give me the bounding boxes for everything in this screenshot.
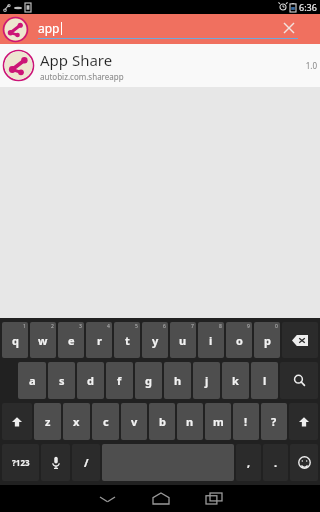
staticText: / xyxy=(84,455,89,470)
button[interactable]: p xyxy=(254,322,280,358)
staticText: b xyxy=(159,414,166,429)
staticText: 6:36 xyxy=(299,1,317,13)
button[interactable]: w xyxy=(30,322,56,358)
staticText: autobiz.com.shareapp xyxy=(40,71,124,82)
button[interactable]: v xyxy=(121,403,147,440)
staticText: 3 xyxy=(79,323,82,330)
staticText: app xyxy=(38,20,60,36)
staticText: e xyxy=(68,333,75,348)
button[interactable]: j xyxy=(193,362,220,399)
button[interactable]: g xyxy=(135,362,162,399)
staticText: z xyxy=(45,414,51,429)
button[interactable]: Backspace xyxy=(282,322,318,358)
button[interactable]: l xyxy=(251,362,278,399)
staticText: a xyxy=(29,373,36,388)
button[interactable]: Shift xyxy=(289,403,318,440)
button[interactable]: ?123 xyxy=(2,444,39,481)
button[interactable]: / xyxy=(72,444,100,481)
staticText: m xyxy=(213,414,224,429)
staticText: s xyxy=(59,373,65,388)
staticText: i xyxy=(209,333,213,348)
staticText: 2 xyxy=(51,323,54,330)
staticText: r xyxy=(97,333,102,348)
staticText: w xyxy=(38,333,48,348)
button[interactable]: m xyxy=(205,403,231,440)
button[interactable]: Home xyxy=(134,485,187,512)
button[interactable]: i xyxy=(198,322,224,358)
staticText: l xyxy=(263,373,267,388)
staticText: 8 xyxy=(219,323,222,330)
button[interactable]: Recent apps xyxy=(187,485,240,512)
button[interactable]: q xyxy=(2,322,28,358)
staticText: 7 xyxy=(191,323,194,330)
staticText: g xyxy=(145,373,152,388)
staticText: k xyxy=(232,373,239,388)
staticText: f xyxy=(117,373,122,388)
staticText: h xyxy=(174,373,182,388)
staticText: ? xyxy=(271,414,277,429)
staticText: c xyxy=(103,414,109,429)
staticText: 1.0 xyxy=(305,60,317,71)
staticText: 6 xyxy=(163,323,166,330)
button[interactable]: e xyxy=(58,322,84,358)
staticText: u xyxy=(179,333,187,348)
staticText: , xyxy=(247,455,251,470)
button[interactable]: b xyxy=(149,403,175,440)
button[interactable]: h xyxy=(164,362,191,399)
button[interactable]: c xyxy=(92,403,119,440)
button[interactable]: Emoji xyxy=(290,444,318,481)
button[interactable]: ? xyxy=(261,403,287,440)
staticText: ?123 xyxy=(12,457,30,468)
staticText: o xyxy=(236,333,243,348)
button[interactable]: y xyxy=(142,322,168,358)
button[interactable]: d xyxy=(77,362,104,399)
staticText: . xyxy=(274,455,278,470)
staticText: 1 xyxy=(23,323,26,330)
button[interactable]: u xyxy=(170,322,196,358)
button[interactable]: Voice input xyxy=(41,444,70,481)
button[interactable]: ! xyxy=(233,403,259,440)
button[interactable]: f xyxy=(106,362,133,399)
staticText: y xyxy=(152,333,159,348)
button[interactable]: Clear query xyxy=(280,19,298,37)
staticText: n xyxy=(186,414,194,429)
button[interactable]: Search xyxy=(280,362,318,399)
staticText: 9 xyxy=(247,323,250,330)
button[interactable]: , xyxy=(236,444,261,481)
button[interactable]: r xyxy=(86,322,112,358)
staticText: App Share xyxy=(40,50,113,70)
staticText: 5 xyxy=(135,323,138,330)
button[interactable]: k xyxy=(222,362,249,399)
staticText: d xyxy=(87,373,94,388)
button[interactable]: App Share xyxy=(0,44,320,87)
staticText: x xyxy=(73,414,80,429)
button[interactable]: o xyxy=(226,322,252,358)
button[interactable]: a xyxy=(18,362,46,399)
staticText: p xyxy=(264,333,271,348)
button[interactable]: n xyxy=(177,403,203,440)
button[interactable]: t xyxy=(114,322,140,358)
staticText: v xyxy=(131,414,138,429)
button[interactable]: z xyxy=(34,403,61,440)
button[interactable]: . xyxy=(263,444,288,481)
staticText: 4 xyxy=(107,323,110,330)
button[interactable]: Hide keyboard xyxy=(81,485,134,512)
button[interactable]: s xyxy=(48,362,75,399)
staticText: t xyxy=(125,333,130,348)
button[interactable]: x xyxy=(63,403,90,440)
staticText: 0 xyxy=(275,323,278,330)
staticText: q xyxy=(12,333,19,348)
staticText: j xyxy=(205,373,209,388)
button[interactable]: Navigate up xyxy=(1,15,29,43)
staticText: ! xyxy=(244,414,248,429)
button[interactable]: Shift xyxy=(2,403,32,440)
